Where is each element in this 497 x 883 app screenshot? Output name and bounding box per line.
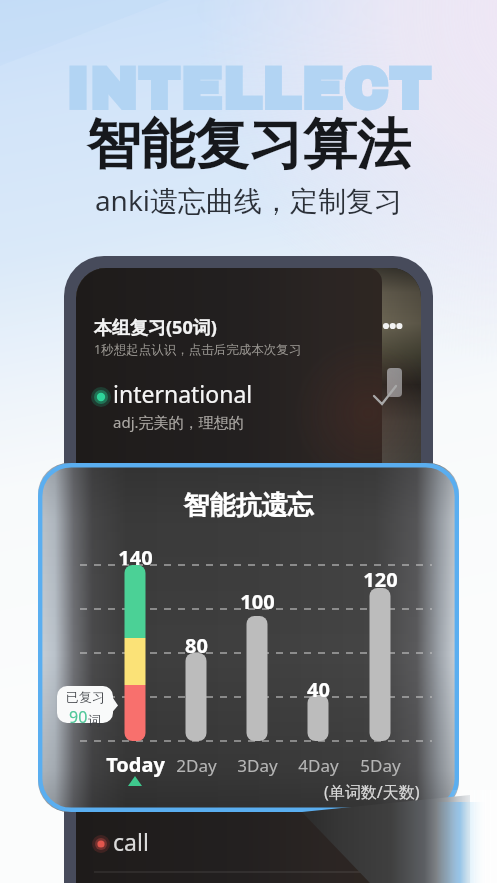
staticText: call xyxy=(113,826,149,857)
staticText: 本组复习(50词) xyxy=(94,315,217,340)
button[interactable]: international xyxy=(76,378,421,444)
staticText: 140 xyxy=(118,544,153,571)
staticText: 100 xyxy=(240,588,275,615)
staticText: 5Day xyxy=(360,754,401,777)
staticText: Today xyxy=(106,751,165,778)
staticText: anki遗忘曲线，定制复习 xyxy=(0,181,497,219)
staticText: 已复习 xyxy=(66,689,105,705)
staticText: INTELLECT xyxy=(0,59,497,121)
staticText: adj.完美的，理想的 xyxy=(113,412,244,432)
button[interactable]: call xyxy=(76,821,421,861)
staticText: 4Day xyxy=(298,754,339,777)
staticText: 2Day xyxy=(176,754,217,777)
staticText: 80 xyxy=(185,632,208,659)
staticText: international xyxy=(113,378,253,409)
staticText: (单词数/天数) xyxy=(324,781,420,803)
staticText: 智能复习算法 xyxy=(0,111,497,179)
staticText: 3Day xyxy=(237,754,278,777)
staticText: 智能抗遗忘 xyxy=(38,489,459,522)
staticText: 词 xyxy=(88,712,101,728)
staticText: 90 xyxy=(69,706,88,728)
staticText: 1秒想起点认识，点击后完成本次复习 xyxy=(94,341,302,358)
staticText: 40 xyxy=(307,676,330,703)
button[interactable]: More options xyxy=(374,313,408,339)
staticText: 120 xyxy=(363,566,398,593)
